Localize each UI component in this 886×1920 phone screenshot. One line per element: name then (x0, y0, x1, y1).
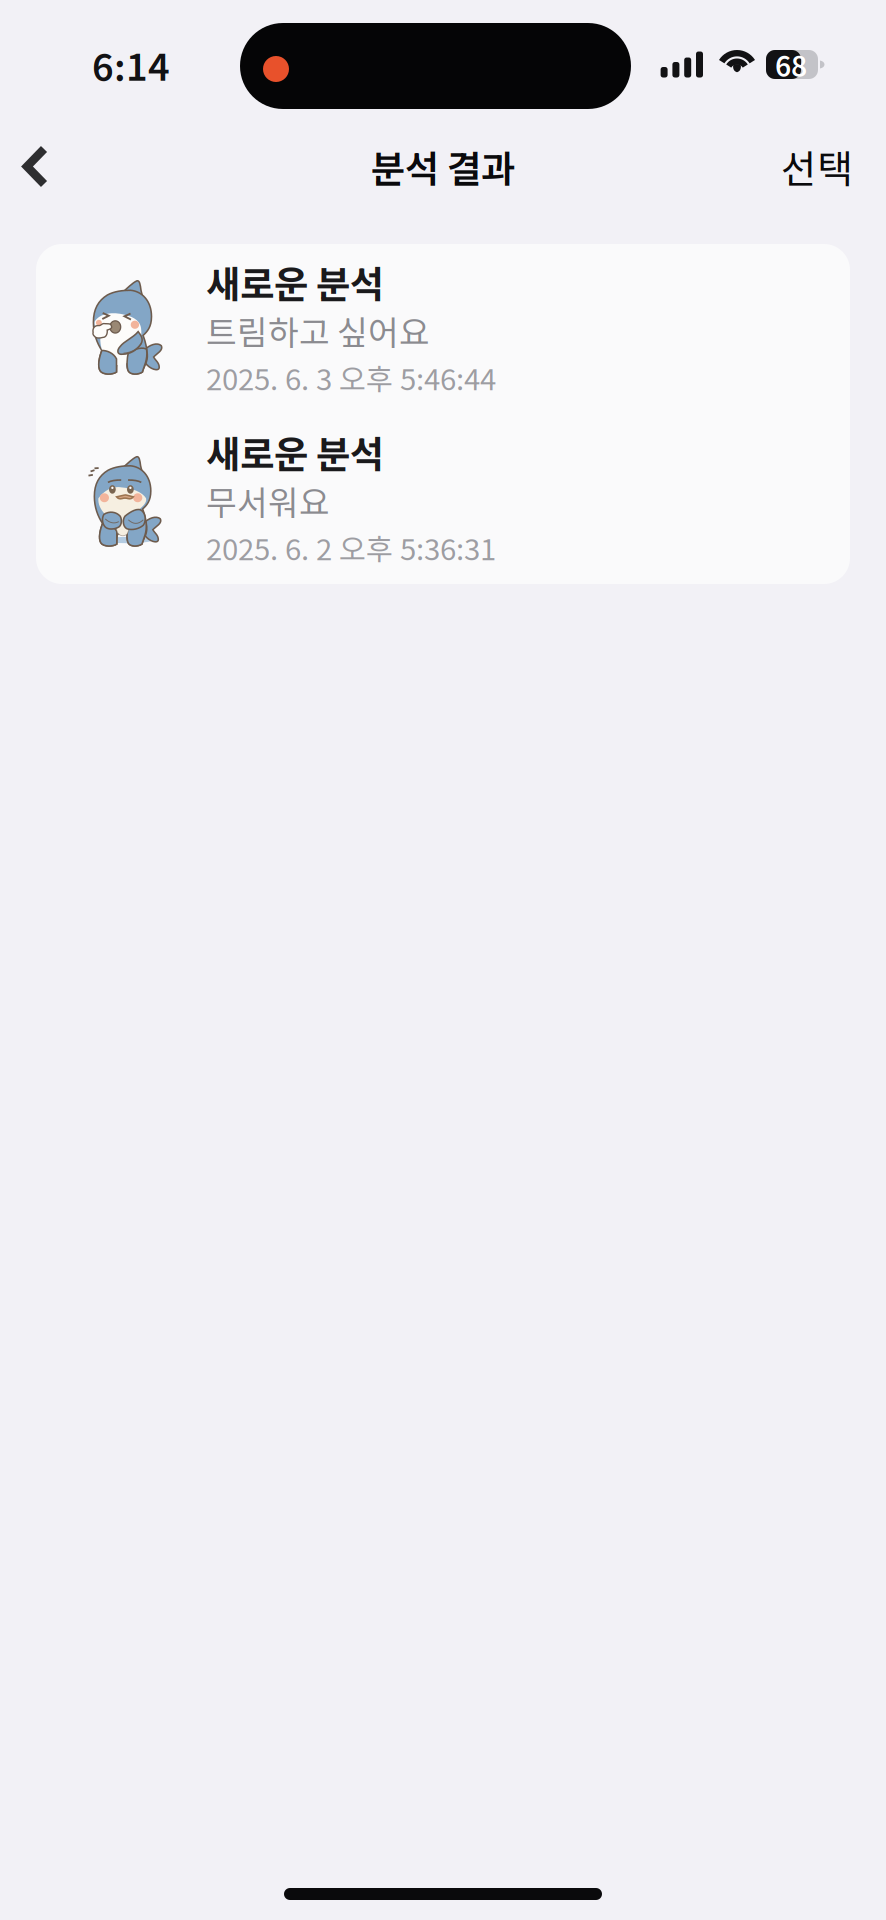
button[interactable]: 새로운 분석 (36, 414, 850, 584)
staticText: 선택 (781, 138, 853, 194)
staticText: 새로운 분석 (206, 255, 384, 309)
staticText: 트림하고 싶어요 (206, 306, 430, 355)
button[interactable]: 선택 (753, 120, 886, 212)
button[interactable]: 새로운 분석 (36, 244, 850, 414)
staticText: 새로운 분석 (206, 425, 384, 479)
staticText: 68 (775, 44, 807, 85)
staticText: 무서워요 (206, 476, 330, 525)
staticText: 분석 결과 (371, 139, 515, 194)
staticText: 6:14 (92, 37, 170, 92)
staticText: 2025. 6. 3 오후 5:46:44 (206, 356, 496, 399)
staticText: 2025. 6. 2 오후 5:36:31 (206, 526, 496, 569)
button[interactable]: Back (0, 131, 86, 202)
